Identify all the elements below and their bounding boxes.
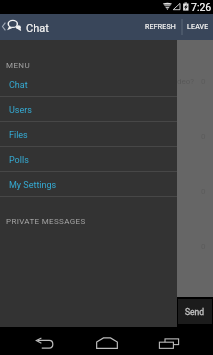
button[interactable]: Users <box>0 97 177 122</box>
staticText: My Settings <box>9 180 57 191</box>
button[interactable]: Recent apps <box>141 329 197 355</box>
staticText: Send <box>185 307 205 317</box>
button[interactable]: My Settings <box>0 172 177 197</box>
button[interactable]: Chat <box>0 72 177 97</box>
button[interactable]: LEAVE <box>183 14 213 40</box>
button[interactable]: Files <box>0 122 177 147</box>
staticText: 7:26 <box>191 1 212 13</box>
staticText: Chat <box>26 22 49 35</box>
staticText: REFRESH <box>145 23 177 31</box>
staticText: deo? <box>177 77 195 86</box>
staticText: MENU <box>6 61 31 70</box>
staticText: Users <box>9 105 32 116</box>
staticText: Chat <box>9 80 28 91</box>
button[interactable]: REFRESH <box>141 14 181 40</box>
staticText: LEAVE <box>187 23 209 31</box>
button[interactable]: Chat, navigate up <box>0 14 52 40</box>
button[interactable]: Send <box>178 299 212 324</box>
staticText: PRIVATE MESSAGES <box>6 217 86 226</box>
button[interactable]: Back <box>17 329 73 355</box>
button[interactable]: Home <box>79 329 135 355</box>
staticText: Files <box>9 130 28 141</box>
button[interactable]: Polls <box>0 147 177 172</box>
staticText: Polls <box>9 155 29 166</box>
